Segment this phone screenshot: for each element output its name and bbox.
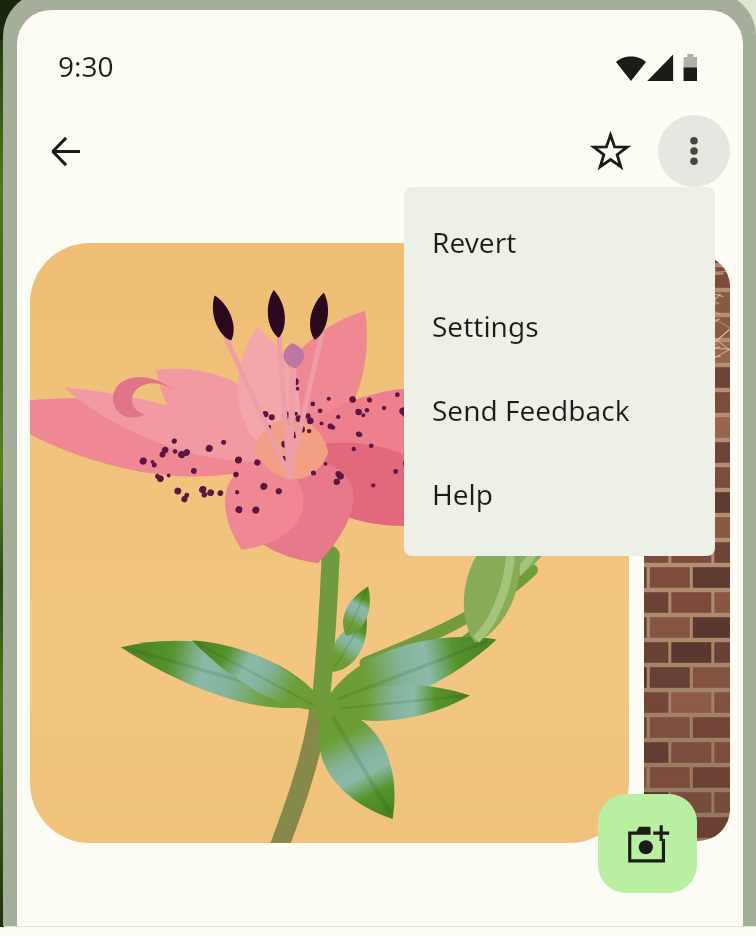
- button[interactable]: Help: [404, 466, 715, 522]
- button[interactable]: More options: [658, 115, 730, 187]
- button[interactable]: Favorite: [580, 121, 640, 181]
- button[interactable]: Back: [35, 121, 95, 181]
- button[interactable]: Add photo: [598, 794, 697, 893]
- button[interactable]: Send Feedback: [404, 382, 715, 438]
- staticText: Help: [432, 475, 493, 513]
- button[interactable]: Settings: [404, 298, 715, 354]
- staticText: 9:30: [58, 47, 114, 85]
- staticText: Revert: [432, 223, 517, 261]
- staticText: Send Feedback: [432, 391, 630, 429]
- button[interactable]: Revert: [404, 214, 715, 270]
- staticText: Settings: [432, 307, 539, 345]
